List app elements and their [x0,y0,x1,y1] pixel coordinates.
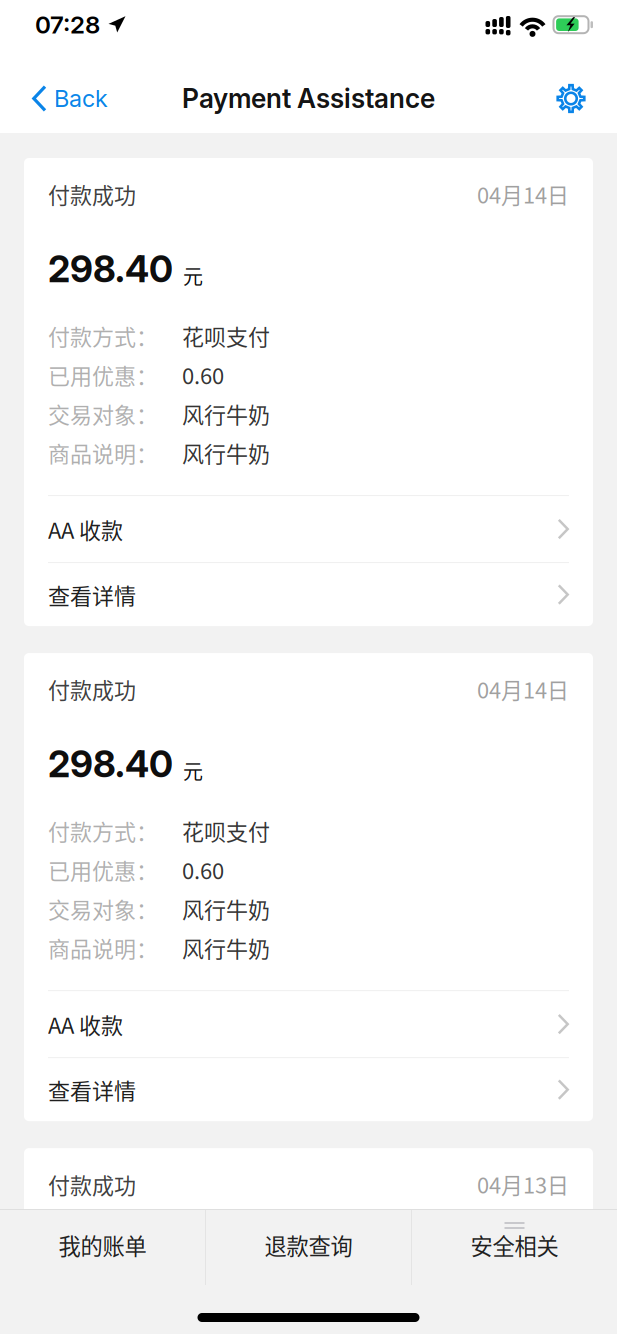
staticText: Back [54,84,108,113]
button[interactable]: AA 收款 [24,496,593,562]
staticText: 04月14日 [477,673,569,705]
staticText: 风行牛奶 [182,437,270,468]
staticText: 花呗支付 [182,320,270,351]
button[interactable]: AA 收款 [24,991,593,1057]
staticText: AA 收款 [48,1008,123,1040]
staticText: 风行牛奶 [182,398,270,429]
staticText: 付款成功 [48,178,136,210]
staticText: 元 [183,756,203,785]
staticText: 0.60 [182,359,224,390]
staticText: 交易对象： [48,398,158,429]
staticText: 商品说明： [48,437,158,468]
staticText: 04月14日 [477,178,569,210]
staticText: 风行牛奶 [182,932,270,964]
staticText: 查看详情 [48,1074,136,1106]
staticText: 风行牛奶 [182,893,270,925]
staticText: 298.40 [48,742,173,786]
staticText: 付款方式： [48,815,158,847]
staticText: 0.60 [182,854,224,886]
staticText: 查看详情 [48,579,136,610]
staticText: 我的账单 [58,1229,146,1261]
button[interactable]: Settings [548,75,594,121]
staticText: 298.40 [48,247,173,291]
staticText: 元 [183,261,203,290]
button[interactable]: 我的账单 [0,1210,205,1285]
staticText: 商品说明： [48,932,158,964]
staticText: 已用优惠： [48,359,158,390]
staticText: Payment Assistance [182,82,435,114]
button[interactable]: 查看详情 [24,563,593,626]
staticText: 花呗支付 [182,815,270,847]
staticText: 付款成功 [48,1168,136,1200]
button[interactable]: 退款查询 [206,1210,411,1285]
staticText: 298.40 [48,1237,173,1281]
staticText: 安全相关 [470,1229,558,1261]
staticText: AA 收款 [48,513,123,545]
staticText: 付款成功 [48,673,136,705]
staticText: 已用优惠： [48,854,158,886]
staticText: 04月13日 [477,1168,569,1200]
staticText: 退款查询 [264,1229,352,1261]
staticText: 交易对象： [48,893,158,925]
staticText: 花呗支付 [182,1310,270,1334]
staticText: 付款方式： [48,320,158,351]
button[interactable]: 查看详情 [24,1058,593,1121]
button[interactable]: 安全相关 [412,1210,617,1285]
button[interactable]: Back [24,74,116,123]
staticText: 07:28 [35,10,100,39]
